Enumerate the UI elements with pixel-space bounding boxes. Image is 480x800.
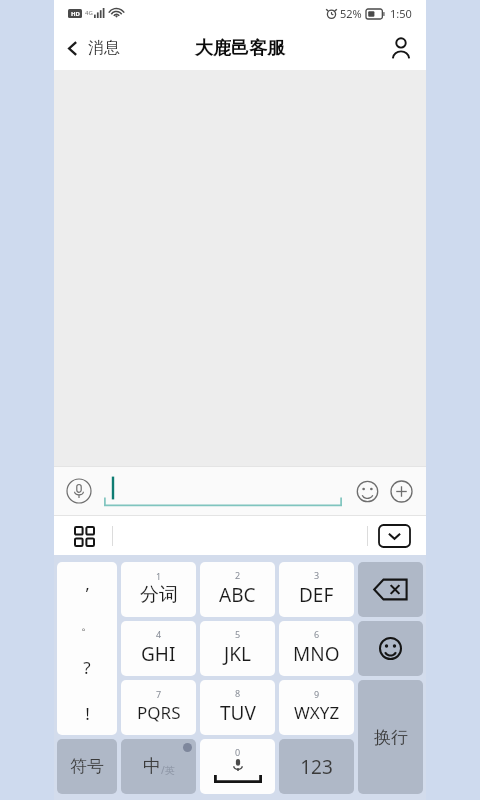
button[interactable]: Space (200, 739, 275, 794)
button[interactable]: 2 (200, 562, 275, 617)
staticText: TUV (220, 700, 256, 726)
button[interactable]: 换行 (358, 680, 423, 794)
button[interactable]: 符号 (57, 739, 117, 794)
button[interactable]: Backspace (358, 562, 423, 617)
staticText: 123 (300, 754, 333, 780)
staticText: 。 (81, 618, 93, 633)
staticText: 5 (235, 628, 241, 640)
staticText: 9 (314, 688, 320, 700)
button[interactable]: Profile (376, 27, 426, 69)
staticText: 大鹿邑客服 (195, 37, 285, 60)
staticText: ! (85, 702, 90, 725)
staticText: 中 (143, 755, 161, 778)
button[interactable]: 9 (279, 680, 354, 735)
button[interactable]: 7 (121, 680, 196, 735)
staticText: 4 (156, 628, 162, 640)
button[interactable]: 123 (279, 739, 354, 794)
staticText: GHI (141, 641, 176, 667)
staticText: 6 (314, 628, 320, 640)
staticText: ABC (219, 582, 256, 608)
staticText: MNO (293, 641, 340, 667)
staticText: 消息 (88, 38, 120, 58)
staticText: 换行 (374, 727, 408, 748)
button[interactable]: 4 (121, 621, 196, 676)
button[interactable] (104, 467, 342, 515)
button[interactable]: 中 (121, 739, 196, 794)
staticText: 0 (235, 746, 241, 758)
staticText: 8 (235, 687, 241, 699)
button[interactable]: More options (386, 476, 416, 506)
staticText: 52% (340, 6, 362, 21)
staticText: 1 (156, 570, 162, 582)
staticText: 2 (235, 569, 241, 581)
button[interactable]: Emoji keyboard (358, 621, 423, 676)
staticText: HD (71, 10, 80, 18)
staticText: WXYZ (294, 701, 340, 724)
staticText: PQRS (137, 701, 181, 724)
staticText: DEF (299, 582, 334, 608)
staticText: 7 (156, 688, 162, 700)
staticText: 4G (85, 9, 93, 17)
button[interactable]: 8 (200, 680, 275, 735)
staticText: /英 (161, 763, 175, 777)
button[interactable]: 3 (279, 562, 354, 617)
button[interactable]: 消息 (54, 30, 132, 66)
button[interactable]: 6 (279, 621, 354, 676)
staticText: 3 (314, 569, 320, 581)
staticText: JKL (224, 641, 251, 667)
button[interactable]: Voice input (64, 476, 94, 506)
staticText: 分词 (140, 583, 178, 607)
button[interactable]: Keyboard tools (54, 520, 106, 552)
staticText: 1:50 (390, 6, 412, 21)
button[interactable]: 1 (121, 562, 196, 617)
button[interactable]: Hide keyboard (363, 517, 426, 555)
button[interactable]: 5 (200, 621, 275, 676)
button[interactable]: , (57, 562, 117, 735)
button[interactable]: Emoji (352, 476, 382, 506)
staticText: 符号 (70, 756, 104, 777)
staticText: ? (83, 656, 91, 679)
staticText: , (85, 572, 90, 595)
